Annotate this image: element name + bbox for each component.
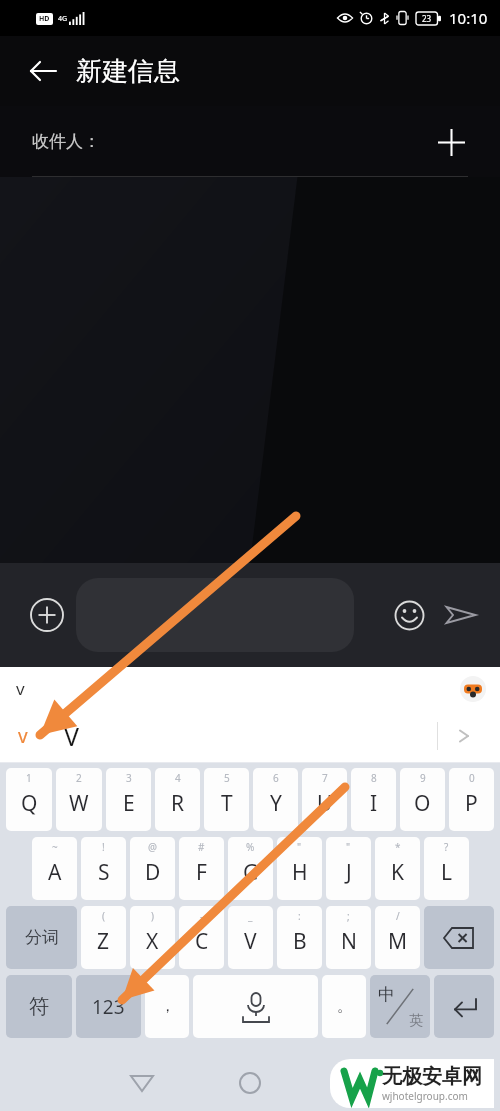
button[interactable]: %	[228, 837, 273, 900]
staticText: #	[198, 840, 205, 854]
button[interactable]: 0	[449, 768, 494, 831]
button[interactable]: Space	[193, 975, 318, 1038]
staticText: v	[18, 723, 28, 749]
staticText: O	[414, 789, 431, 818]
staticText: V	[244, 927, 257, 956]
button[interactable]: ，	[145, 975, 189, 1038]
staticText: %	[246, 840, 255, 854]
staticText: !	[102, 840, 105, 854]
staticText: 。	[337, 997, 352, 1016]
button[interactable]: (	[81, 906, 126, 969]
staticText: Q	[21, 789, 38, 818]
staticText: W	[69, 789, 89, 818]
staticText: @	[148, 840, 157, 854]
button[interactable]: Send	[436, 590, 486, 640]
button[interactable]: 分词	[6, 906, 77, 969]
staticText: 无极安卓网	[382, 1064, 482, 1089]
staticText: "	[346, 840, 351, 854]
button[interactable]: Emoji	[386, 592, 432, 638]
button[interactable]: Back	[118, 1059, 166, 1107]
staticText: 8	[371, 771, 377, 785]
button[interactable]: 7	[302, 768, 347, 831]
button[interactable]: Enter	[434, 975, 494, 1038]
staticText: 4G	[58, 14, 68, 24]
button[interactable]: "	[277, 837, 322, 900]
staticText: *	[395, 840, 401, 854]
staticText: 符	[29, 994, 49, 1019]
staticText: ;	[347, 909, 350, 923]
button[interactable]: ?	[424, 837, 469, 900]
button[interactable]: 5	[204, 768, 249, 831]
button[interactable]: /	[375, 906, 420, 969]
button[interactable]: !	[81, 837, 126, 900]
button[interactable]: 6	[253, 768, 298, 831]
staticText: "	[297, 840, 302, 854]
staticText: 中	[378, 984, 395, 1005]
button[interactable]: ~	[32, 837, 77, 900]
staticText: /	[396, 909, 400, 923]
button[interactable]: 2	[56, 768, 102, 831]
button[interactable]: 8	[351, 768, 396, 831]
staticText: Y	[270, 789, 282, 818]
staticText: D	[145, 858, 161, 887]
button[interactable]: Add attachment	[20, 588, 74, 642]
button[interactable]: 1	[6, 768, 52, 831]
staticText: 2	[76, 771, 82, 785]
staticText: E	[123, 789, 135, 818]
button[interactable]: More candidates	[444, 716, 484, 756]
staticText: A	[48, 858, 62, 887]
staticText: 6	[273, 771, 279, 785]
button[interactable]: "	[326, 837, 371, 900]
button[interactable]: Keyboard assistant	[458, 674, 488, 704]
button[interactable]: -	[179, 906, 224, 969]
button[interactable]: Backspace	[424, 906, 494, 969]
button[interactable]: 符	[6, 975, 72, 1038]
button[interactable]: )	[130, 906, 175, 969]
button[interactable]: #	[179, 837, 224, 900]
staticText: 5	[224, 771, 230, 785]
button[interactable]: Add recipient	[428, 119, 474, 165]
staticText: _	[248, 909, 253, 923]
staticText: 4	[175, 771, 181, 785]
staticText: S	[98, 858, 110, 887]
button[interactable]	[76, 578, 354, 652]
staticText: ~	[52, 840, 58, 854]
staticText: 新建信息	[76, 55, 180, 88]
button[interactable]: *	[375, 837, 420, 900]
staticText: 0	[469, 771, 475, 785]
staticText: F	[196, 858, 207, 887]
button[interactable]: ;	[326, 906, 371, 969]
button[interactable]: 4	[155, 768, 200, 831]
staticText: T	[221, 789, 233, 818]
button[interactable]: Back	[20, 48, 66, 94]
staticText: R	[171, 789, 185, 818]
staticText: V	[64, 719, 80, 753]
staticText: (	[102, 909, 105, 923]
staticText: :	[298, 909, 301, 923]
button[interactable]: 9	[400, 768, 445, 831]
button[interactable]: 。	[322, 975, 366, 1038]
staticText: P	[465, 789, 478, 818]
button[interactable]: v	[0, 710, 500, 762]
staticText: 123	[92, 994, 125, 1020]
staticText: M	[388, 927, 408, 956]
staticText: -	[200, 909, 204, 923]
button[interactable]: @	[130, 837, 175, 900]
button[interactable]: 中	[370, 975, 430, 1038]
staticText: H	[292, 858, 308, 887]
button[interactable]: 3	[106, 768, 151, 831]
button[interactable]: _	[228, 906, 273, 969]
button[interactable]: Home	[226, 1059, 274, 1107]
staticText: X	[146, 927, 159, 956]
staticText: HD	[39, 14, 50, 24]
button[interactable]: 123	[76, 975, 141, 1038]
staticText: I	[370, 789, 378, 818]
staticText: wjhotelgroup.com	[382, 1089, 468, 1103]
button[interactable]: :	[277, 906, 322, 969]
staticText: Z	[97, 927, 110, 956]
staticText: 分词	[25, 927, 59, 948]
staticText: C	[195, 927, 209, 956]
staticText: U	[317, 789, 333, 818]
staticText: J	[346, 858, 352, 887]
staticText: G	[243, 858, 259, 887]
